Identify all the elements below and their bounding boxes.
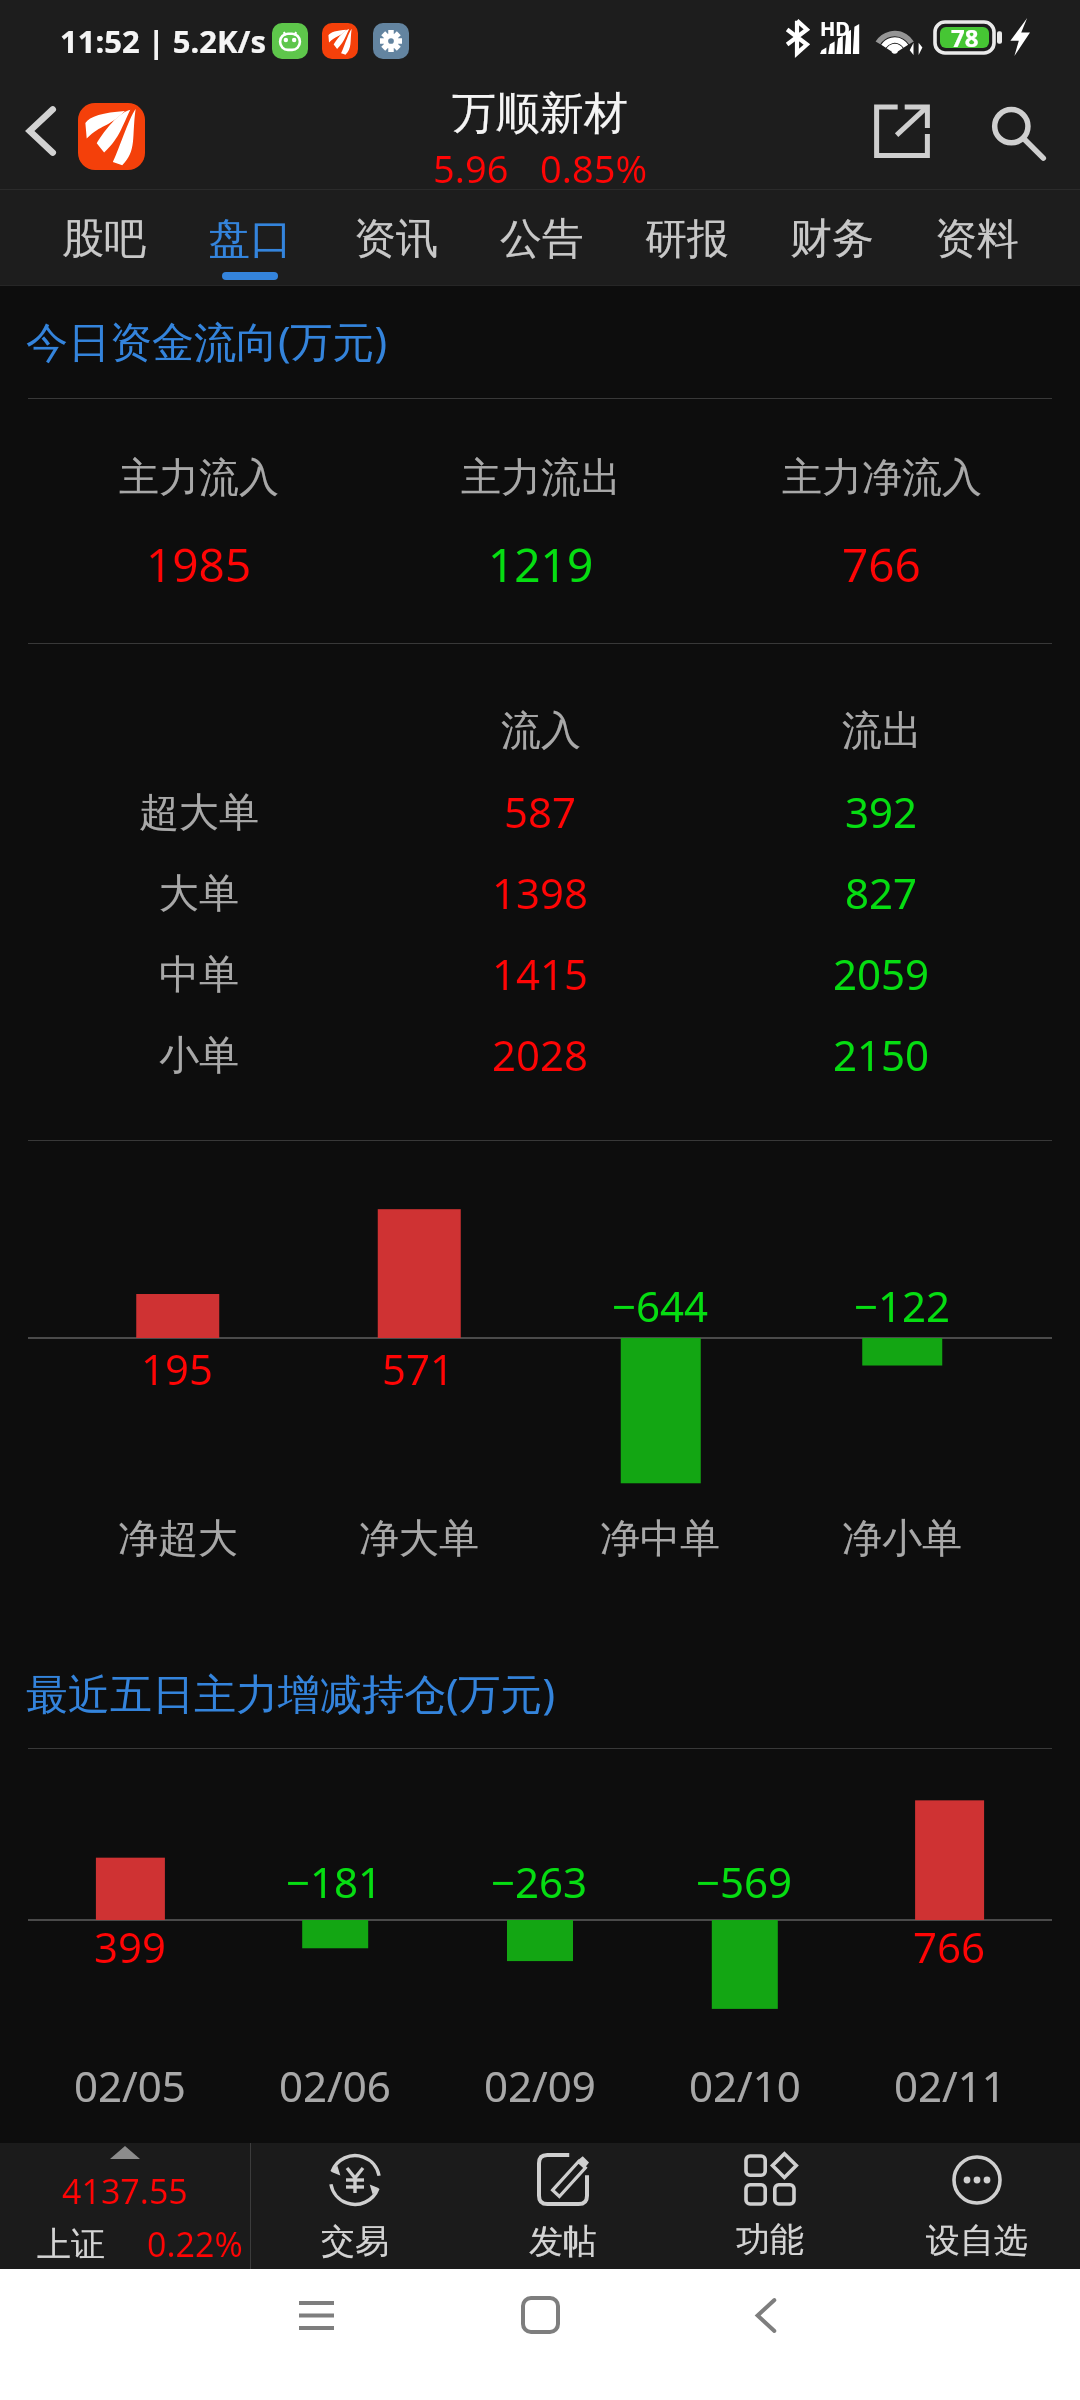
staticText: 78 [951, 21, 979, 54]
staticText: 2150 [833, 1026, 930, 1083]
staticText: 万顺新材 [452, 86, 628, 141]
button[interactable]: 财务 [759, 190, 904, 286]
staticText: 股吧 [62, 213, 146, 266]
staticText: −569 [696, 1853, 793, 1910]
staticText: 392 [845, 783, 918, 840]
staticText: 1985 [146, 533, 252, 596]
staticText: 02/10 [689, 2057, 801, 2114]
staticText: 399 [94, 1918, 167, 1975]
staticText: 2059 [833, 945, 930, 1002]
staticText: 流入 [501, 705, 581, 755]
staticText: 主力流出 [461, 452, 621, 502]
staticText: 净超大 [118, 1513, 238, 1563]
button[interactable]: App home [78, 103, 145, 170]
button[interactable]: Search [972, 78, 1066, 186]
button[interactable]: Recent apps [271, 2270, 361, 2360]
staticText: 主力净流入 [782, 452, 982, 502]
staticText: 研报 [645, 213, 729, 266]
button[interactable]: Share [855, 77, 949, 185]
staticText: 设自选 [926, 2219, 1028, 2262]
staticText: 中单 [159, 949, 239, 999]
staticText: 02/11 [894, 2057, 1006, 2114]
staticText: −644 [612, 1277, 709, 1334]
staticText: 1415 [492, 945, 589, 1002]
staticText: −122 [854, 1277, 951, 1334]
staticText: 766 [842, 533, 921, 596]
staticText: 02/05 [74, 2057, 186, 2114]
staticText: −181 [286, 1853, 383, 1910]
staticText: 766 [913, 1918, 986, 1975]
staticText: 11:52 | 5.2K/s [60, 20, 267, 62]
staticText: 1219 [488, 533, 594, 596]
staticText: 587 [504, 783, 577, 840]
staticText: 超大单 [139, 787, 259, 837]
staticText: 4137.55 [62, 2168, 188, 2214]
staticText: 上证 [37, 2223, 105, 2266]
button[interactable]: 交易 [251, 2143, 459, 2269]
staticText: HD [820, 15, 850, 42]
staticText: 小单 [159, 1030, 239, 1080]
staticText: 净大单 [359, 1513, 479, 1563]
staticText: 净中单 [600, 1513, 720, 1563]
staticText: 资料 [935, 213, 1019, 266]
staticText: 盘口 [208, 213, 292, 266]
staticText: 交易 [321, 2220, 389, 2263]
button[interactable]: Back [6, 77, 76, 185]
staticText: 净小单 [842, 1513, 962, 1563]
staticText: 02/09 [484, 2057, 596, 2114]
button[interactable]: 研报 [614, 190, 759, 286]
staticText: 02/06 [279, 2057, 391, 2114]
staticText: 流出 [842, 705, 922, 755]
staticText: 公告 [500, 213, 584, 266]
staticText: 大单 [159, 868, 239, 918]
button[interactable]: 功能 [666, 2143, 873, 2269]
staticText: 195 [141, 1340, 214, 1397]
staticText: 0.85% [540, 142, 647, 194]
button[interactable]: 资料 [904, 190, 1049, 286]
staticText: 主力流入 [119, 452, 279, 502]
button[interactable]: Home [495, 2270, 585, 2360]
button[interactable]: Back [721, 2270, 811, 2360]
staticText: 功能 [736, 2218, 804, 2261]
button[interactable]: 股吧 [31, 190, 177, 286]
staticText: 5.96 [433, 142, 509, 194]
staticText: 财务 [790, 213, 874, 266]
staticText: 资讯 [354, 213, 438, 266]
staticText: 发帖 [529, 2220, 597, 2263]
button[interactable]: 设自选 [873, 2143, 1080, 2269]
button[interactable]: 资讯 [323, 190, 469, 286]
staticText: 571 [382, 1340, 455, 1397]
staticText: 最近五日主力增减持仓(万元) [26, 1664, 556, 1721]
button[interactable]: 盘口 [177, 190, 323, 286]
staticText: 2028 [492, 1026, 589, 1083]
button[interactable]: 公告 [469, 190, 614, 286]
staticText: 0.22% [147, 2221, 243, 2267]
staticText: 827 [845, 864, 918, 921]
staticText: 今日资金流向(万元) [26, 312, 388, 369]
staticText: −263 [491, 1853, 588, 1910]
button[interactable]: 4137.55 [0, 2143, 250, 2269]
button[interactable]: 发帖 [459, 2143, 666, 2269]
staticText: 1398 [492, 864, 589, 921]
